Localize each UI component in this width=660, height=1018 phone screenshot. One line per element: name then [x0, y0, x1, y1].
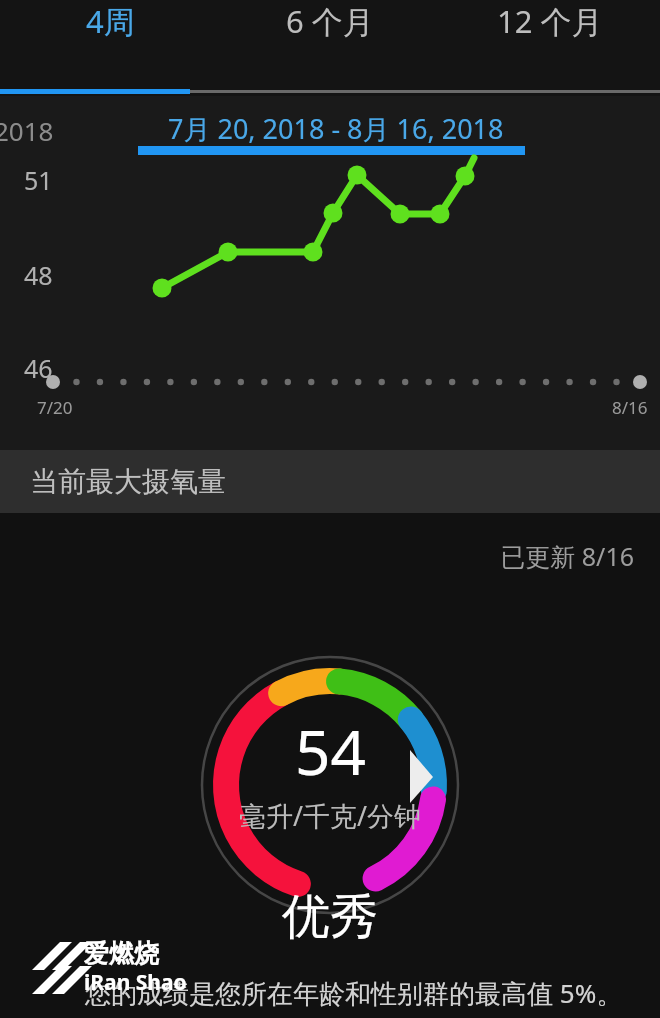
- staticText: 当前最大摄氧量: [30, 464, 226, 499]
- staticText: 4周: [86, 0, 135, 42]
- button[interactable]: 12 个月: [440, 0, 660, 42]
- staticText: 毫升/千克/分钟: [239, 797, 422, 834]
- staticText: 8/16: [612, 396, 648, 419]
- button[interactable]: 4周: [0, 0, 220, 42]
- staticText: iRan Shao: [84, 968, 187, 997]
- staticText: 51: [24, 163, 53, 197]
- staticText: 54: [295, 709, 366, 793]
- staticText: 您的成绩是您所在年龄和性别群的最高值 5%。: [85, 975, 623, 1011]
- staticText: 优秀: [282, 887, 378, 947]
- button[interactable]: 6 个月: [220, 0, 440, 42]
- staticText: 46: [24, 351, 53, 385]
- staticText: 48: [24, 258, 53, 292]
- button[interactable]: 当前最大摄氧量: [0, 450, 660, 513]
- staticText: 已更新 8/16: [0, 539, 634, 573]
- staticText: 6 个月: [286, 0, 374, 42]
- staticText: 2018: [0, 113, 54, 148]
- staticText: 7月 20, 2018 - 8月 16, 2018: [168, 110, 504, 147]
- staticText: 12 个月: [497, 0, 603, 42]
- staticText: 7/20: [37, 396, 73, 419]
- staticText: 爱燃烧: [84, 938, 159, 969]
